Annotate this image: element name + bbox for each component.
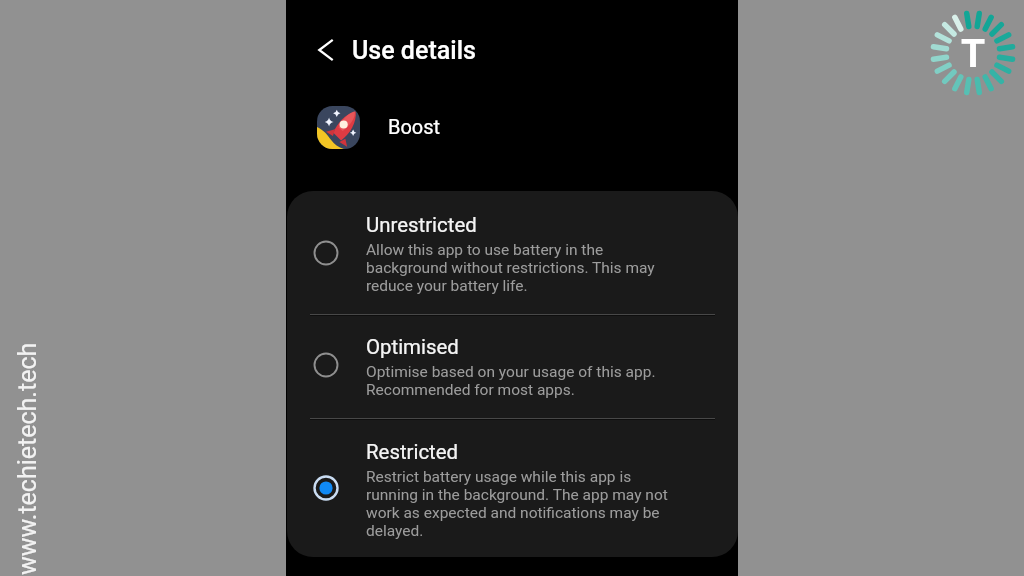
staticText: Optimised: [366, 335, 459, 359]
staticText: www.techietech.tech: [13, 342, 42, 575]
staticText: Allow this app to use battery in the bac…: [366, 241, 655, 295]
button[interactable]: Boost: [310, 99, 490, 155]
staticText: Boost: [388, 115, 441, 138]
button[interactable]: Optimised: [287, 314, 738, 418]
staticText: Restricted: [366, 440, 459, 464]
staticText: Optimise based on your usage of this app…: [366, 363, 656, 399]
button[interactable]: Restricted: [287, 418, 738, 557]
staticText: Restrict battery usage while this app is…: [366, 468, 668, 540]
button[interactable]: Unrestricted: [287, 191, 738, 314]
staticText: T: [961, 31, 986, 77]
button[interactable]: Back: [308, 32, 344, 68]
staticText: Unrestricted: [366, 213, 477, 237]
staticText: Use details: [352, 36, 476, 65]
